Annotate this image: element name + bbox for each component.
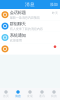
button[interactable]: 消息 bbox=[12, 90, 24, 98]
staticText: 添加 bbox=[50, 2, 58, 7]
button[interactable]: 我的 bbox=[48, 90, 60, 98]
staticText: 通讯 bbox=[39, 94, 45, 98]
staticText: 昨天 bbox=[52, 11, 58, 15]
staticText: 欢迎使用 bbox=[10, 38, 22, 42]
button[interactable]: 首页 bbox=[0, 90, 12, 98]
staticText: 有人发来了新的消息内容 bbox=[10, 27, 43, 31]
button[interactable]: 群组聊天 bbox=[0, 20, 60, 32]
staticText: 发现 bbox=[27, 94, 33, 98]
button[interactable]: 添加 bbox=[50, 2, 60, 7]
staticText: 我的 bbox=[51, 94, 57, 98]
button[interactable] bbox=[0, 43, 60, 55]
staticText: 会话标题 bbox=[10, 10, 26, 15]
button[interactable]: 发现 bbox=[24, 90, 36, 98]
button[interactable]: 会话标题 bbox=[0, 9, 60, 20]
staticText: 消息 bbox=[15, 94, 21, 98]
staticText: 系统通知 bbox=[10, 33, 26, 38]
staticText: 消息 bbox=[25, 2, 35, 7]
staticText: 最新一条消息内容预览 bbox=[10, 16, 40, 20]
staticText: 群组聊天 bbox=[10, 21, 26, 27]
button[interactable]: 系统通知 bbox=[0, 32, 60, 43]
staticText: 首页 bbox=[3, 94, 9, 98]
button[interactable]: 通讯 bbox=[36, 90, 48, 98]
